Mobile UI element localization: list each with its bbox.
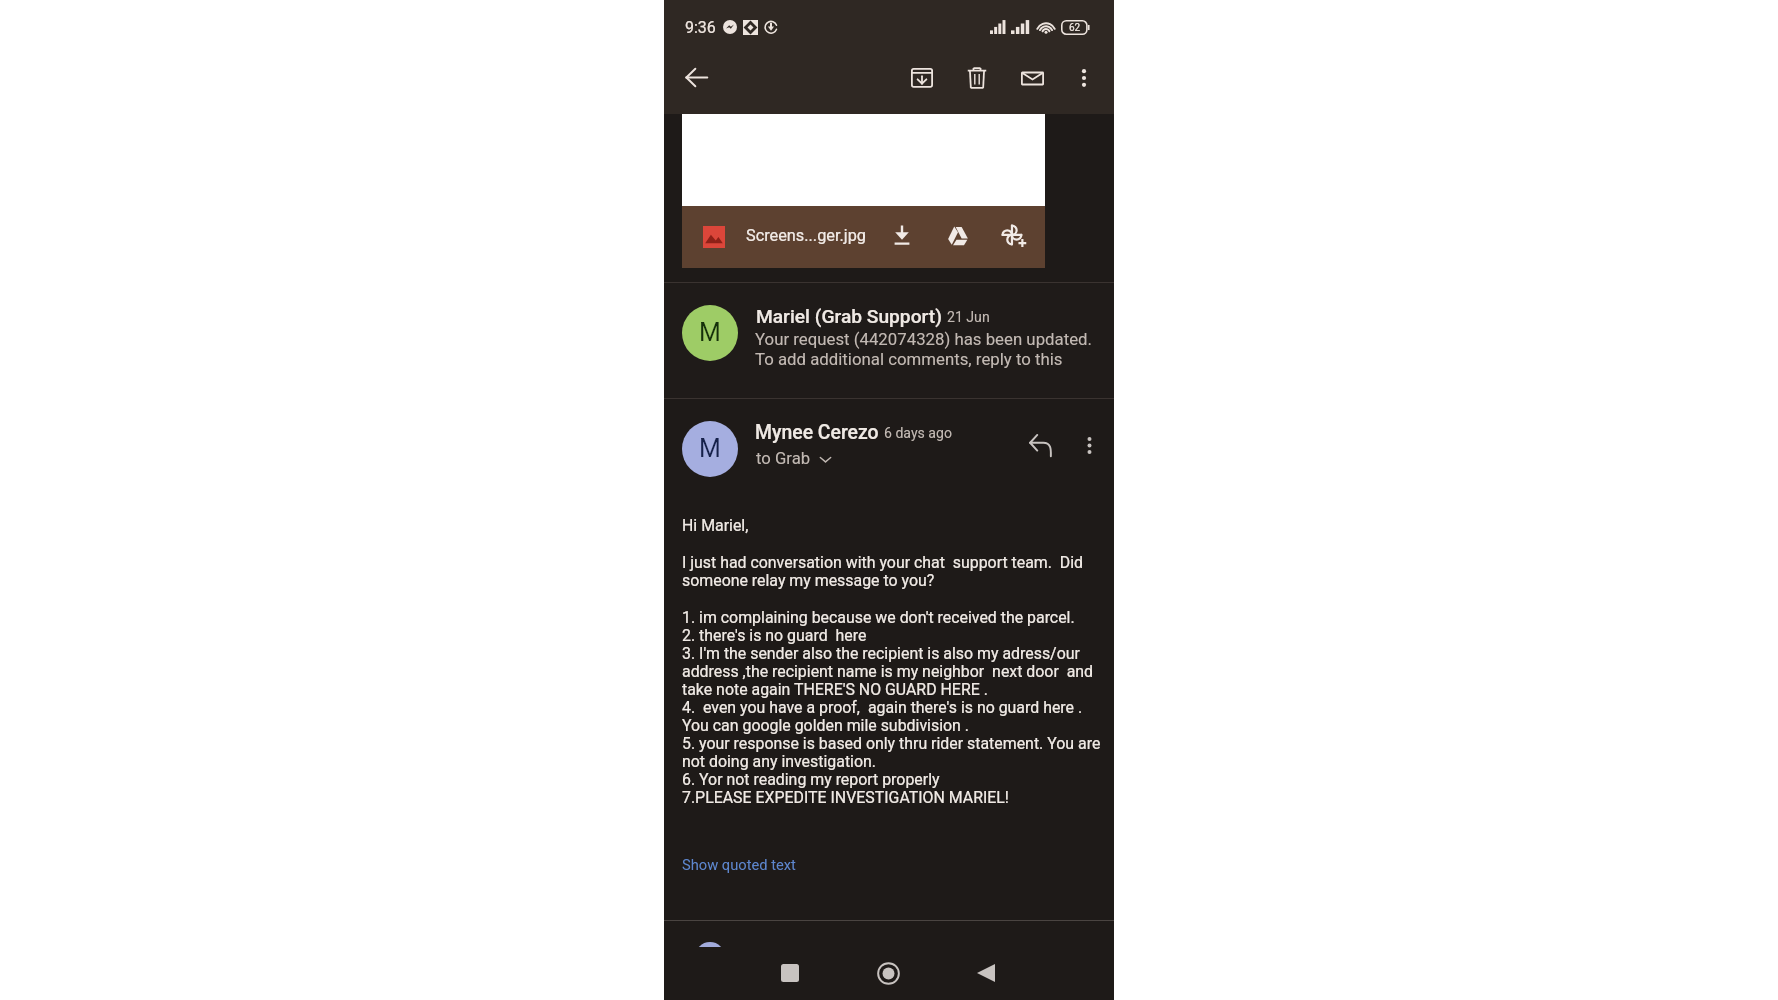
staticText: Mynee Cerezo <box>755 421 879 444</box>
staticText: Screens...ger.jpg <box>746 226 866 245</box>
button[interactable]: More options <box>1069 425 1109 465</box>
button[interactable]: Recent apps <box>766 949 814 997</box>
button[interactable]: Reply <box>1019 424 1061 466</box>
button[interactable]: Mark as unread <box>1009 55 1055 101</box>
staticText: I just had conversation with your chat s… <box>682 553 1103 590</box>
staticText: M <box>699 434 721 463</box>
staticText: 21 Jun <box>947 309 990 326</box>
button[interactable]: to Grab <box>756 449 832 469</box>
staticText: 62 <box>1069 22 1081 34</box>
button[interactable]: Delete <box>954 55 1000 101</box>
staticText: M <box>699 318 721 347</box>
button[interactable]: Download <box>882 215 922 255</box>
staticText: 6 days ago <box>884 425 952 442</box>
button[interactable]: Archive <box>899 55 945 101</box>
staticText: Mariel (Grab Support) <box>756 305 942 328</box>
button[interactable]: Screens...ger.jpg <box>682 206 1045 268</box>
button[interactable]: Save to Drive <box>938 216 978 256</box>
button[interactable]: M <box>664 283 1114 398</box>
button[interactable]: Back <box>673 54 719 100</box>
button[interactable]: Show quoted text <box>682 856 796 873</box>
button[interactable]: Home <box>864 949 912 997</box>
staticText: 9:36 <box>685 18 716 37</box>
staticText: To add additional comments, reply to thi… <box>755 349 1063 369</box>
button[interactable]: More options <box>1063 57 1105 99</box>
button[interactable]: Back <box>962 949 1010 997</box>
staticText: Your request (442074328) has been update… <box>755 329 1092 349</box>
staticText: Show quoted text <box>682 856 796 873</box>
staticText: Hi Mariel, <box>682 516 749 535</box>
staticText: 1. im complaining because we don't recei… <box>682 608 1103 807</box>
staticText: to Grab <box>756 449 811 469</box>
button[interactable]: Save to Photos <box>993 216 1033 256</box>
